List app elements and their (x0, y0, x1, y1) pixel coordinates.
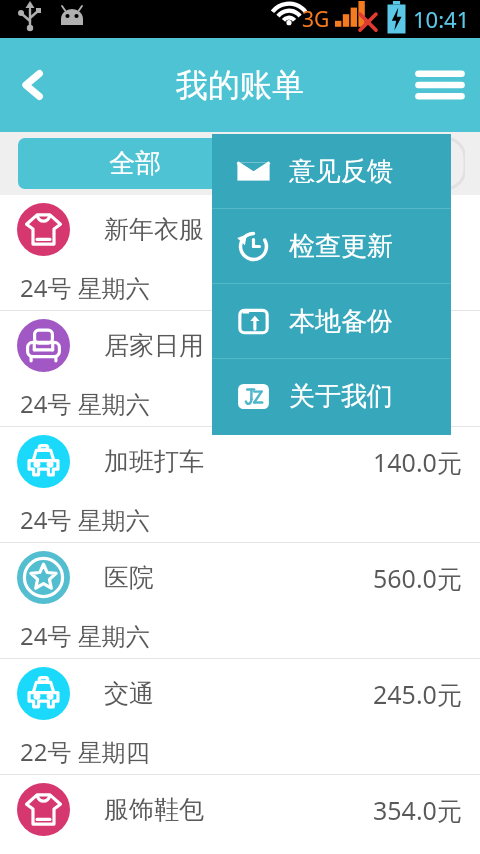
button[interactable]: 全部 (18, 138, 251, 189)
staticText: 检查更新 (289, 230, 393, 263)
staticText: 服饰鞋包 (104, 794, 204, 825)
button[interactable]: 新年衣服 (0, 195, 480, 311)
button[interactable]: Back (0, 38, 66, 132)
staticText: 560.0元 (373, 561, 462, 595)
button[interactable]: 交通 (0, 659, 480, 775)
staticText: 245.0元 (373, 677, 462, 711)
staticText: 本地备份 (289, 305, 393, 338)
staticText: 加班打车 (104, 446, 204, 477)
button[interactable]: 居家日用 (0, 311, 480, 427)
staticText: 24号 星期六 (20, 503, 150, 536)
button[interactable]: 检查更新 (212, 209, 451, 283)
button[interactable]: Menu (400, 38, 480, 132)
button[interactable] (232, 138, 465, 189)
staticText: 意见反馈 (289, 155, 393, 188)
staticText: 22号 星期四 (20, 735, 150, 768)
staticText: 全部 (109, 147, 161, 180)
button[interactable]: 关于我们 (212, 359, 451, 433)
staticText: 3G (302, 5, 330, 34)
staticText: 我的账单 (176, 65, 304, 105)
button[interactable]: 服饰鞋包 (0, 775, 480, 844)
staticText: 居家日用 (104, 330, 204, 361)
staticText: 新年衣服 (104, 214, 204, 245)
staticText: 10:41 (413, 4, 470, 34)
staticText: 医院 (104, 562, 154, 593)
staticText: 140.0元 (373, 445, 462, 479)
button[interactable]: 意见反馈 (212, 134, 451, 208)
staticText: 354.0元 (373, 793, 462, 827)
staticText: 24号 星期六 (20, 271, 150, 304)
button[interactable]: 医院 (0, 543, 480, 659)
button[interactable]: 本地备份 (212, 284, 451, 358)
staticText: 24号 星期六 (20, 619, 150, 652)
staticText: 24号 星期六 (20, 387, 150, 420)
staticText: 交通 (104, 678, 154, 709)
button[interactable]: 加班打车 (0, 427, 480, 543)
staticText: 关于我们 (289, 380, 393, 413)
